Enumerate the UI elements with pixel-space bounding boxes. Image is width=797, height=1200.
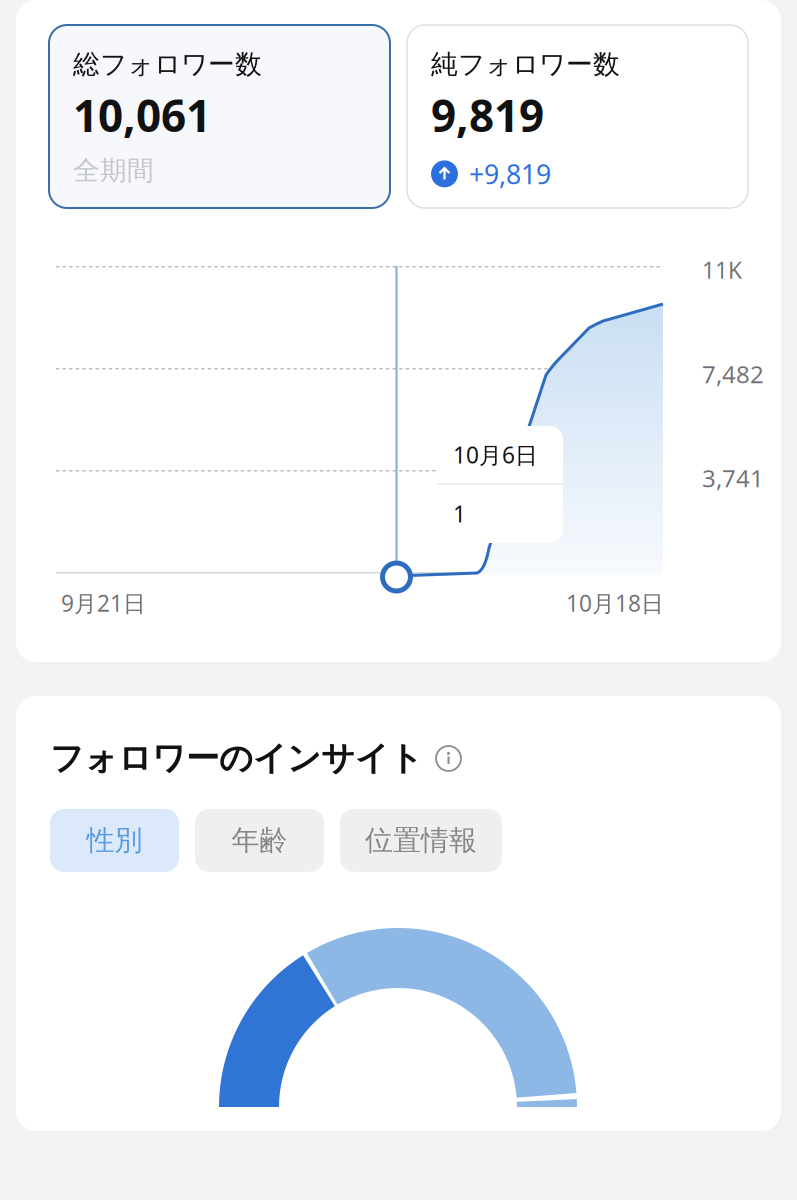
staticText: 9月21日 (61, 588, 146, 618)
button[interactable]: 性別 (50, 809, 179, 872)
button[interactable]: 情報 (436, 746, 461, 771)
staticText: 10月6日 (453, 440, 538, 470)
staticText: +9,819 (469, 156, 551, 192)
staticText: 純フォロワー数 (431, 48, 620, 81)
staticText: 10月18日 (566, 588, 664, 618)
button[interactable]: 年齢 (195, 809, 324, 872)
button[interactable]: 純フォロワー数 (407, 25, 748, 208)
staticText: 11K (702, 255, 742, 285)
button[interactable]: 総フォロワー数 (49, 25, 390, 208)
staticText: 10,061 (73, 86, 211, 144)
staticText: 年齢 (231, 823, 287, 858)
staticText: フォロワーのインサイト (50, 738, 423, 779)
button[interactable]: 位置情報 (340, 809, 502, 872)
staticText: 3,741 (702, 462, 764, 494)
staticText: 総フォロワー数 (73, 48, 262, 81)
staticText: 性別 (86, 823, 142, 858)
staticText: 全期間 (73, 154, 154, 187)
staticText: 9,819 (431, 86, 544, 144)
staticText: 1 (453, 499, 466, 529)
staticText: 位置情報 (365, 823, 477, 858)
staticText: 7,482 (702, 358, 764, 390)
